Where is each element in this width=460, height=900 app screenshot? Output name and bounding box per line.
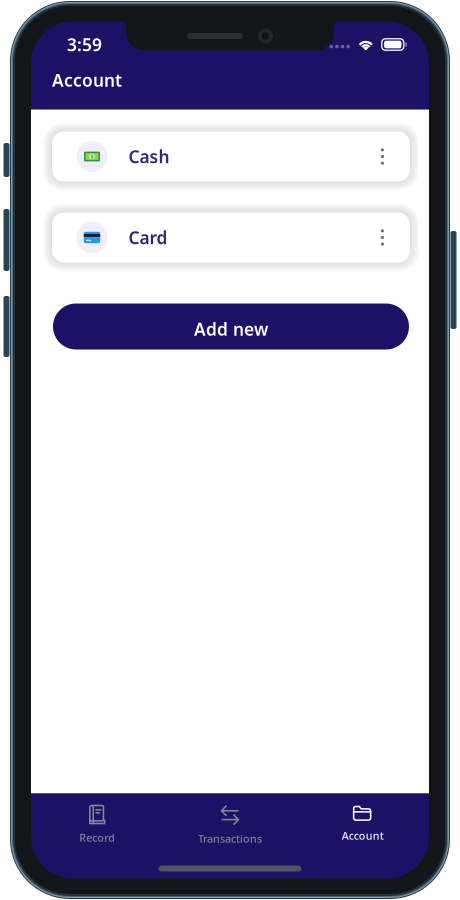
staticText: Account xyxy=(342,828,384,843)
staticText: Account xyxy=(52,68,122,91)
button[interactable]: Transactions xyxy=(164,793,296,849)
staticText: $ xyxy=(90,153,93,160)
staticText: Record xyxy=(79,830,115,845)
staticText: Card xyxy=(128,226,167,249)
staticText: Cash xyxy=(128,145,169,168)
button[interactable]: Add new xyxy=(53,303,409,349)
staticText: Transactions xyxy=(198,831,262,846)
button[interactable]: Card xyxy=(52,212,410,262)
button[interactable]: $ xyxy=(52,131,410,181)
staticText: 3:59 xyxy=(67,33,102,56)
staticText: Add new xyxy=(194,317,268,340)
button[interactable]: Account xyxy=(296,793,429,849)
button[interactable]: Record xyxy=(31,793,164,849)
